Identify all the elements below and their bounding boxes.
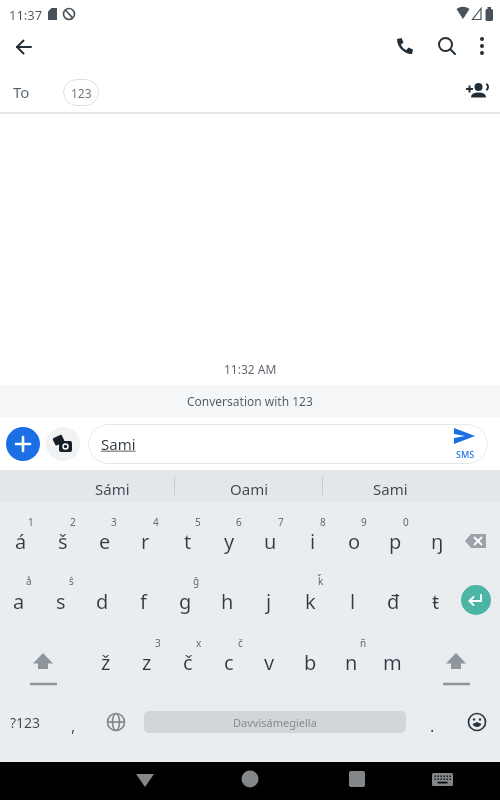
staticText: c — [224, 649, 234, 676]
staticText: 4 — [153, 515, 159, 529]
staticText: ž — [101, 649, 111, 676]
button[interactable] — [430, 29, 464, 63]
staticText: u — [264, 528, 277, 555]
button[interactable] — [134, 770, 156, 792]
button[interactable]: Davvisámegiella — [144, 711, 406, 733]
staticText: l — [350, 588, 356, 615]
button[interactable] — [23, 646, 63, 690]
staticText: ǩ — [318, 574, 324, 588]
staticText: r — [141, 528, 150, 555]
staticText: Oami — [230, 479, 269, 499]
staticText: ŝ — [69, 574, 74, 588]
staticText: o — [348, 528, 361, 555]
staticText: ŋ — [431, 528, 444, 555]
staticText: s — [56, 588, 66, 615]
staticText: m — [383, 649, 402, 676]
staticText: 123 — [71, 85, 92, 101]
staticText: . — [430, 715, 435, 737]
staticText: To — [13, 82, 30, 102]
staticText: a — [13, 588, 25, 615]
staticText: v — [264, 649, 275, 676]
staticText: i — [310, 528, 316, 555]
button[interactable] — [388, 29, 422, 63]
staticText: 9 — [361, 515, 367, 529]
button[interactable]: 123 — [63, 79, 99, 106]
button[interactable] — [430, 770, 456, 796]
staticText: å — [26, 574, 32, 588]
staticText: ñ — [360, 636, 367, 650]
staticText: 5 — [195, 515, 201, 529]
staticText: 3 — [155, 636, 161, 650]
staticText: g — [179, 588, 192, 615]
button[interactable] — [8, 30, 42, 64]
button[interactable]: Sami — [88, 424, 488, 464]
staticText: š — [58, 528, 68, 555]
staticText: p — [389, 528, 402, 555]
staticText: f — [140, 588, 147, 615]
staticText: SMS — [456, 448, 475, 460]
staticText: č — [238, 636, 243, 650]
staticText: Sami — [373, 479, 408, 499]
staticText: e — [99, 528, 111, 555]
staticText: h — [221, 588, 234, 615]
staticText: d — [96, 588, 109, 615]
staticText: ǧ — [193, 574, 200, 588]
staticText: č — [183, 649, 193, 676]
staticText: b — [304, 649, 317, 676]
staticText: Sámi — [95, 479, 130, 499]
button[interactable] — [345, 768, 369, 792]
staticText: 11:32 AM — [224, 361, 277, 377]
staticText: á — [15, 528, 27, 555]
staticText: 8 — [320, 515, 326, 529]
staticText: 3 — [111, 515, 117, 529]
staticText: Davvisámegiella — [233, 715, 317, 730]
button[interactable] — [238, 768, 262, 792]
staticText: đ — [387, 588, 400, 615]
staticText: Conversation with 123 — [187, 393, 313, 409]
button[interactable] — [103, 709, 129, 735]
staticText: j — [266, 588, 272, 615]
staticText: , — [71, 715, 76, 737]
staticText: 7 — [278, 515, 284, 529]
staticText: k — [305, 588, 316, 615]
staticText: 2 — [70, 515, 76, 529]
button[interactable] — [461, 585, 491, 615]
staticText: z — [142, 649, 152, 676]
button[interactable] — [468, 29, 498, 59]
button[interactable] — [46, 427, 80, 461]
staticText: y — [224, 528, 235, 555]
staticText: ?123 — [10, 713, 41, 732]
staticText: x — [196, 636, 202, 650]
button[interactable] — [460, 74, 494, 108]
staticText: Sami — [101, 434, 136, 454]
button[interactable]: SMS — [446, 425, 484, 463]
staticText: t — [184, 528, 192, 555]
staticText: n — [345, 649, 358, 676]
button[interactable] — [436, 646, 476, 690]
button[interactable] — [6, 427, 40, 461]
staticText: 6 — [236, 515, 242, 529]
button[interactable] — [464, 709, 490, 735]
staticText: ŧ — [432, 588, 440, 615]
staticText: 0 — [403, 515, 409, 529]
staticText: 11:37 — [9, 6, 43, 24]
staticText: 1 — [28, 515, 34, 529]
button[interactable] — [456, 524, 496, 558]
